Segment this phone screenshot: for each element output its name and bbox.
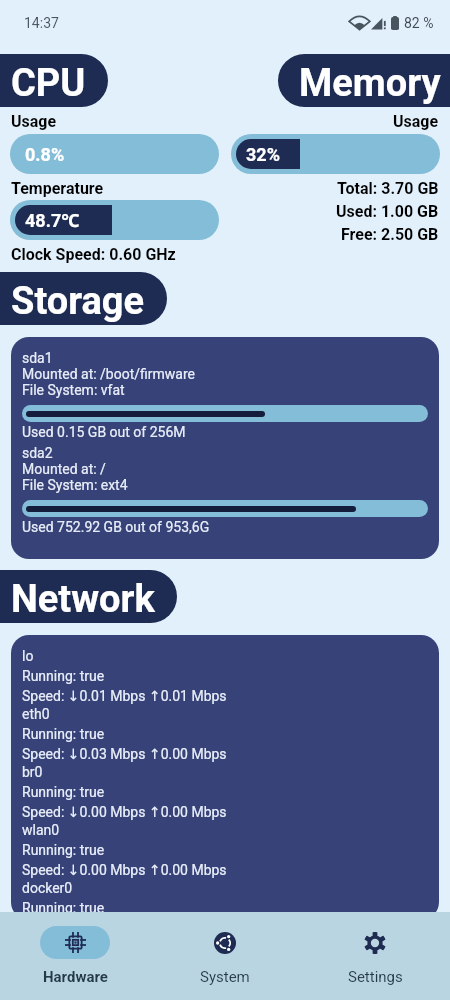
button[interactable]: CPU — [0, 54, 108, 107]
staticText: Usage — [11, 112, 57, 131]
button[interactable]: Settings — [300, 926, 450, 986]
staticText: Used: 1.00 GB — [336, 202, 439, 221]
button[interactable]: Network — [0, 570, 177, 623]
staticText: 14:37 — [24, 15, 59, 31]
staticText: docker0 Running: true Speed: ↓0.00 Mbps … — [22, 880, 227, 920]
staticText: Free: 2.50 GB — [341, 225, 439, 244]
staticText: 0.8% — [25, 144, 65, 165]
staticText: Used 0.15 GB out of 256M — [22, 424, 186, 440]
staticText: sda1 Mounted at: /boot/firmware File Sys… — [22, 350, 196, 398]
staticText: Temperature — [11, 179, 104, 198]
staticText: Total: 3.70 GB — [337, 179, 439, 198]
staticText: Hardware — [43, 968, 108, 986]
staticText: Network — [11, 577, 155, 622]
staticText: lo Running: true Speed: ↓0.01 Mbps ↑0.01… — [22, 648, 227, 704]
staticText: 82 % — [404, 15, 434, 31]
staticText: Used 752.92 GB out of 953,6G — [22, 519, 210, 535]
staticText: eth0 Running: true Speed: ↓0.03 Mbps ↑0.… — [22, 706, 227, 762]
staticText: Usage — [393, 112, 439, 131]
button[interactable]: System — [150, 926, 300, 986]
staticText: 32% — [246, 144, 280, 165]
staticText: Clock Speed: 0.60 GHz — [11, 245, 176, 264]
staticText: Storage — [11, 279, 145, 324]
staticText: sda2 Mounted at: / File System: ext4 — [22, 445, 128, 493]
staticText: br0 Running: true Speed: ↓0.00 Mbps ↑0.0… — [22, 764, 227, 820]
button[interactable]: Storage — [0, 272, 167, 325]
staticText: Settings — [348, 968, 403, 986]
staticText: CPU — [11, 61, 86, 106]
button[interactable]: Memory — [278, 54, 450, 107]
staticText: Memory — [299, 61, 441, 106]
staticText: System — [200, 968, 250, 986]
button[interactable]: Hardware — [0, 926, 150, 986]
staticText: 48.7℃ — [25, 208, 80, 233]
staticText: wlan0 Running: true Speed: ↓0.00 Mbps ↑0… — [22, 822, 227, 878]
